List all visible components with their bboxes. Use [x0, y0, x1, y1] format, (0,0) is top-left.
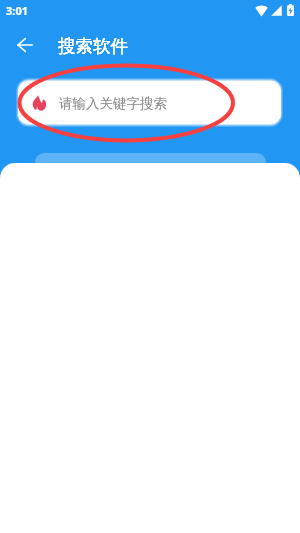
staticText: 搜索软件: [58, 35, 128, 57]
staticText: 请输入关键字搜索: [59, 95, 167, 112]
staticText: 搜索软件: [58, 35, 128, 57]
staticText: 3:01: [6, 3, 28, 18]
button[interactable]: 请输入关键字搜索: [18, 81, 281, 124]
button[interactable]: Back: [8, 28, 42, 62]
